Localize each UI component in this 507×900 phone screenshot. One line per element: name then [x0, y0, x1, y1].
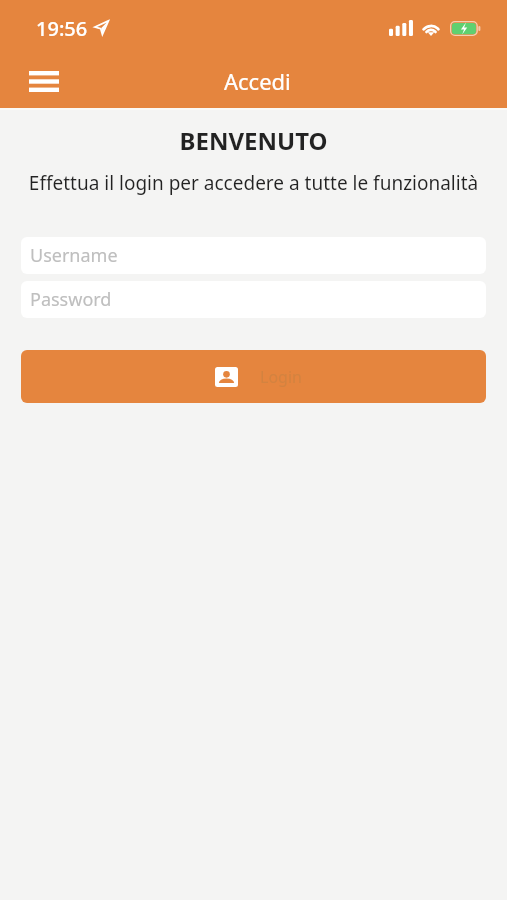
- button[interactable]: Login: [21, 350, 486, 403]
- button[interactable]: Menu: [18, 54, 70, 106]
- staticText: Effettua il login per accedere a tutte l…: [0, 170, 507, 196]
- staticText: BENVENUTO: [0, 124, 507, 157]
- staticText: 19:56: [36, 15, 88, 42]
- staticText: Username: [30, 243, 118, 268]
- staticText: Password: [30, 287, 112, 312]
- staticText: Login: [260, 366, 302, 388]
- staticText: Accedi: [224, 66, 291, 96]
- button[interactable]: Password: [21, 281, 486, 318]
- button[interactable]: Username: [21, 237, 486, 274]
